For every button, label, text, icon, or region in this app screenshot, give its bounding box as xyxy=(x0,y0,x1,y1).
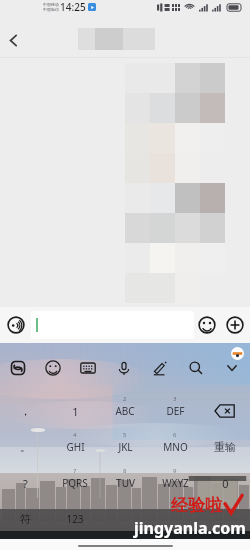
staticText: 123 xyxy=(66,512,84,526)
staticText: JKL xyxy=(118,440,133,454)
staticText: 中国电信 xyxy=(43,7,59,12)
staticText: 3 xyxy=(173,395,177,403)
staticText: 9 xyxy=(173,467,177,475)
staticText: TUV xyxy=(116,476,135,490)
staticText: PQRS xyxy=(62,476,88,490)
button[interactable]: ， xyxy=(0,393,50,429)
staticText: 7 xyxy=(73,467,77,475)
staticText: jingyanla.com xyxy=(134,517,246,539)
button[interactable]: Sogou input xyxy=(0,343,35,393)
button[interactable]: 6 xyxy=(150,429,200,465)
button[interactable]: Voice xyxy=(106,343,142,393)
staticText: 中国移动 xyxy=(43,2,59,7)
staticText: GHI xyxy=(66,440,85,454)
button[interactable] xyxy=(200,393,250,429)
button[interactable]: 重输 xyxy=(200,429,250,465)
button[interactable]: Keyboard layout xyxy=(70,343,106,393)
staticText: 5 xyxy=(123,431,127,439)
button[interactable]: Collapse keyboard xyxy=(214,343,250,393)
button[interactable]: 符 xyxy=(0,501,50,537)
button[interactable]: 123 xyxy=(50,501,100,537)
button[interactable]: 。 xyxy=(0,429,50,465)
button[interactable]: Back xyxy=(0,25,26,55)
staticText: ? xyxy=(23,476,28,491)
staticText: WXYZ xyxy=(162,476,189,490)
button[interactable]: Search xyxy=(178,343,214,393)
button[interactable]: 8 xyxy=(100,465,150,501)
staticText: MNO xyxy=(163,440,188,454)
button[interactable]: 7 xyxy=(50,465,100,501)
button[interactable]: 9 xyxy=(150,465,200,501)
staticText: 符 xyxy=(20,512,31,526)
staticText: 重输 xyxy=(214,440,236,454)
staticText: 4 xyxy=(73,431,77,439)
staticText: 14:25 xyxy=(60,0,86,14)
button[interactable]: 4 xyxy=(50,429,100,465)
button[interactable] xyxy=(100,501,150,537)
staticText: 6 xyxy=(173,431,177,439)
staticText: 8 xyxy=(123,467,127,475)
staticText: 1 xyxy=(72,404,79,419)
button[interactable]: Emoji xyxy=(194,307,220,343)
button[interactable] xyxy=(200,501,250,537)
staticText: 经验啦 xyxy=(171,495,222,516)
staticText: ABC xyxy=(115,404,135,418)
button[interactable] xyxy=(31,311,194,339)
button[interactable]: More xyxy=(220,307,250,343)
staticText: 0 xyxy=(222,476,229,491)
button[interactable]: 0 xyxy=(200,465,250,501)
staticText: DEF xyxy=(166,404,185,418)
button[interactable]: 5 xyxy=(100,429,150,465)
button[interactable]: Emoji xyxy=(35,343,70,393)
staticText: ， xyxy=(20,404,31,418)
button[interactable]: 1 xyxy=(50,393,100,429)
button[interactable] xyxy=(150,501,200,537)
button[interactable]: Voice input xyxy=(0,307,31,343)
button[interactable]: Handwriting xyxy=(142,343,178,393)
button[interactable]: ? xyxy=(0,465,50,501)
button[interactable]: 3 xyxy=(150,393,200,429)
button[interactable]: 2 xyxy=(100,393,150,429)
staticText: 。 xyxy=(20,440,31,454)
staticText: 2 xyxy=(123,395,127,403)
